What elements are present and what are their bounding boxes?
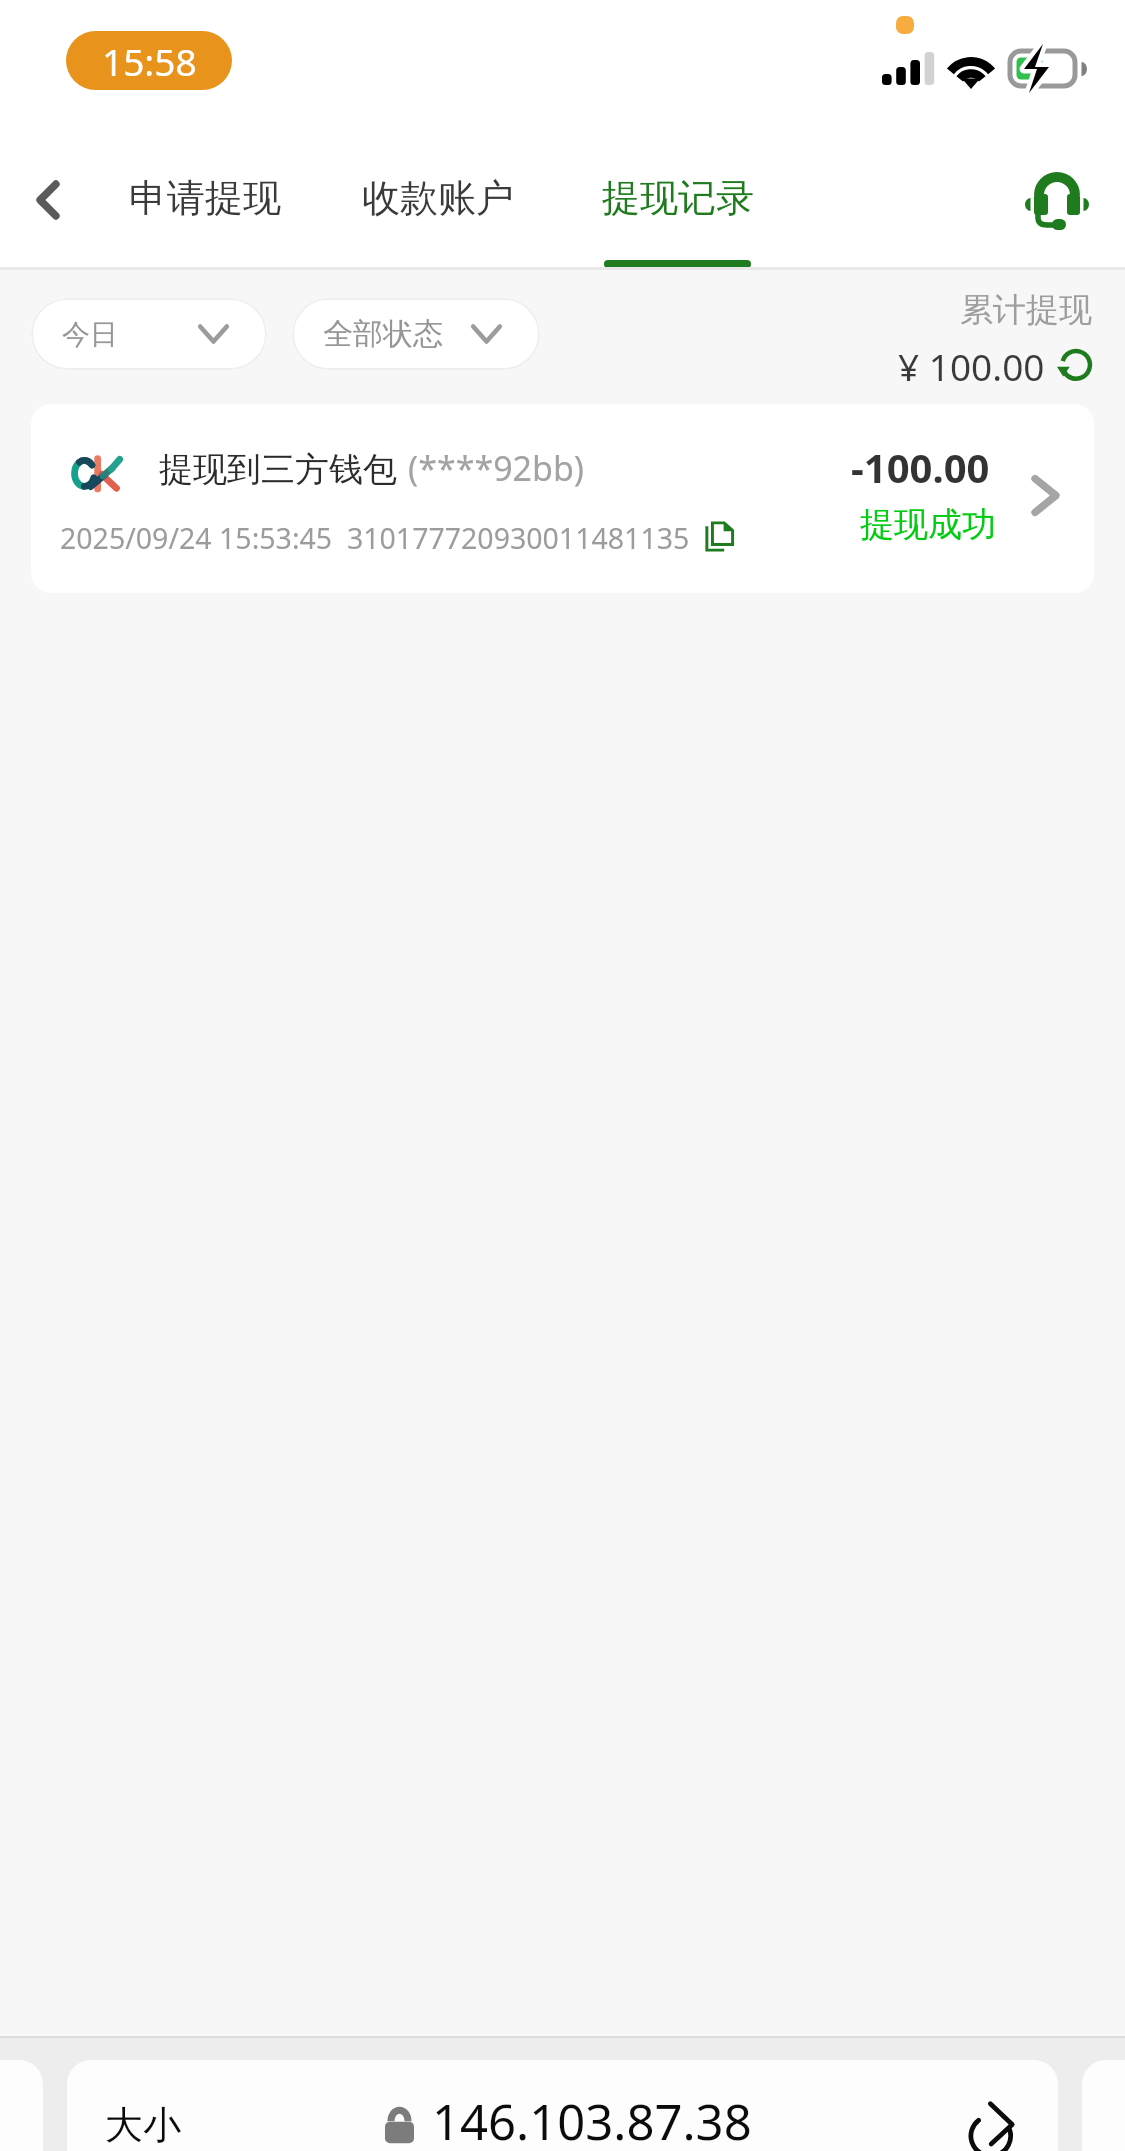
staticText: 累计提现 xyxy=(960,289,1092,331)
button[interactable]: Copy transaction id xyxy=(701,517,739,555)
staticText: 15:58 xyxy=(102,36,197,86)
staticText: 2025/09/24 15:53:45 31017772093001148113… xyxy=(60,519,690,558)
staticText: 收款账户 xyxy=(362,174,514,222)
button[interactable]: 提现到三方钱包 xyxy=(31,404,1094,593)
button[interactable]: 大小 xyxy=(67,2060,1058,2151)
staticText: ¥ 100.00 xyxy=(898,341,1045,391)
button[interactable]: 收款账户 xyxy=(360,140,515,267)
button[interactable]: 申请提现 xyxy=(127,140,282,267)
button[interactable]: Refresh total xyxy=(1054,345,1096,387)
button[interactable]: 提现记录 xyxy=(600,140,755,267)
button[interactable]: Reload page xyxy=(963,2097,1023,2151)
staticText: 大小 xyxy=(105,2101,181,2149)
staticText: 提现记录 xyxy=(602,174,754,222)
staticText: 全部状态 xyxy=(323,315,443,353)
button[interactable]: 今日 xyxy=(31,298,267,370)
staticText: -100.00 xyxy=(851,440,990,494)
button[interactable]: 全部状态 xyxy=(292,298,540,370)
staticText: 146.103.87.38 xyxy=(432,2088,752,2151)
staticText: 提现到三方钱包 xyxy=(159,448,397,491)
button[interactable]: Customer service xyxy=(1005,160,1109,240)
staticText: 申请提现 xyxy=(129,174,281,222)
staticText: (****92bb) xyxy=(408,445,585,491)
staticText: 今日 xyxy=(62,317,118,352)
button[interactable]: Back xyxy=(0,152,96,248)
staticText: 提现成功 xyxy=(860,503,996,546)
